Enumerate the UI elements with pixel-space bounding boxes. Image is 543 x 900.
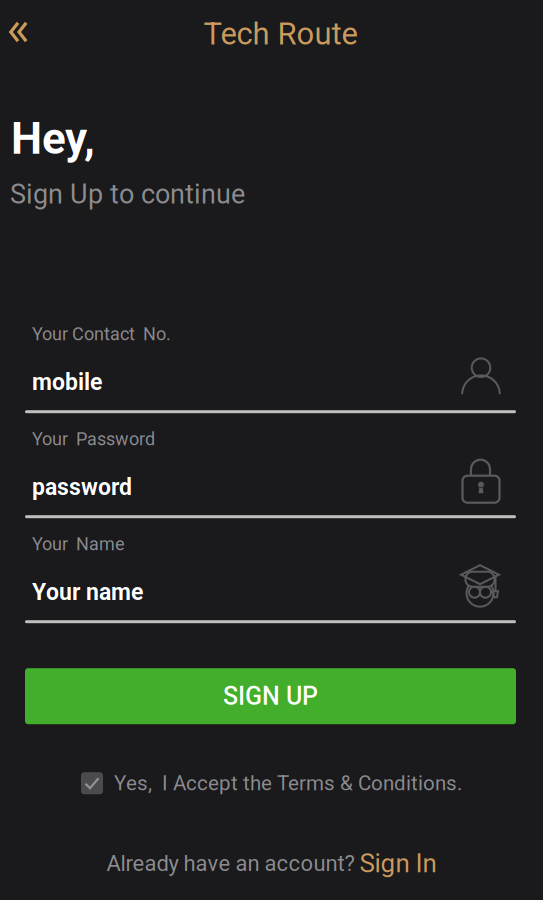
button[interactable]: Your Password: [25, 432, 516, 518]
staticText: Hey,: [11, 113, 95, 165]
staticText: Sign In: [359, 848, 436, 879]
button[interactable]: Back: [0, 9, 37, 55]
staticText: password: [32, 474, 132, 501]
button[interactable]: Your Contact No.: [25, 327, 516, 413]
staticText: SIGN UP: [223, 682, 318, 711]
staticText: mobile: [32, 369, 102, 396]
staticText: Tech Route: [203, 16, 357, 52]
staticText: Your Contact No.: [32, 324, 171, 345]
button[interactable]: Yes, I Accept the Terms & Conditions.: [0, 765, 543, 801]
staticText: Yes, I Accept the Terms & Conditions.: [114, 771, 462, 795]
staticText: Your name: [32, 579, 143, 606]
button[interactable]: Your Name: [25, 537, 516, 623]
staticText: Sign Up to continue: [10, 179, 245, 210]
staticText: Your Password: [32, 429, 155, 450]
staticText: Your Name: [32, 534, 125, 555]
button[interactable]: SIGN UP: [25, 668, 516, 724]
staticText: Already have an account?: [106, 850, 359, 876]
button[interactable]: Sign In: [359, 848, 436, 879]
